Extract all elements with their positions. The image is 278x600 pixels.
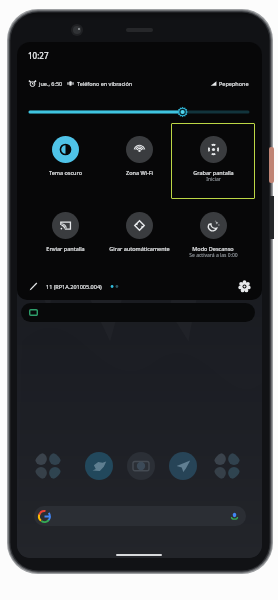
staticText: Grabar pantalla — [193, 169, 234, 176]
button[interactable] — [34, 506, 246, 526]
button[interactable]: Tema oscuro — [28, 123, 102, 199]
staticText: Enviar pantalla — [46, 245, 85, 252]
button[interactable] — [213, 452, 241, 480]
button[interactable] — [169, 452, 197, 480]
staticText: 11 (RP1A.201005.004) — [46, 283, 102, 290]
button[interactable]: Zona Wi-Fi — [102, 123, 176, 199]
staticText: Teléfono en vibración — [77, 80, 133, 87]
button[interactable] — [127, 452, 155, 480]
button[interactable]: Girar automáticamente — [102, 199, 176, 275]
staticText: Se activará a las 0:00 — [189, 252, 238, 259]
button[interactable] — [85, 452, 113, 480]
staticText: Tema oscuro — [49, 169, 82, 176]
button[interactable]: Enviar pantalla — [28, 199, 102, 275]
staticText: Pepephone — [219, 80, 249, 87]
button[interactable] — [21, 303, 255, 322]
button[interactable]: Grabar pantalla — [176, 123, 250, 199]
staticText: Iniciar — [206, 176, 221, 183]
staticText: jue., 6:50 — [39, 80, 63, 87]
button[interactable]: Edit tiles — [28, 281, 39, 292]
staticText: Modo Descanso — [192, 245, 234, 252]
button[interactable] — [34, 452, 62, 480]
button[interactable]: Modo Descanso — [176, 199, 250, 275]
button[interactable]: Settings — [238, 280, 251, 293]
staticText: 10:27 — [28, 50, 49, 61]
staticText: Zona Wi-Fi — [126, 169, 153, 176]
staticText: Girar automáticamente — [109, 245, 170, 252]
